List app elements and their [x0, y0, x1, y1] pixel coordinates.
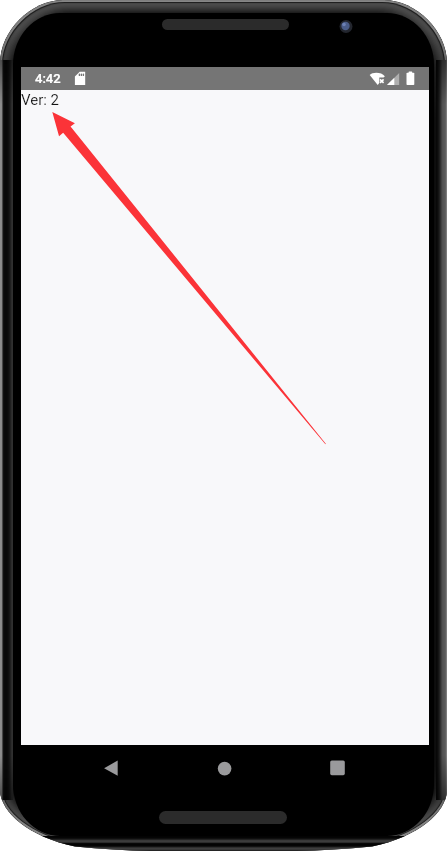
staticText: Ver: 2	[21, 91, 60, 109]
staticText: 4:42	[35, 71, 61, 86]
button[interactable]: Home	[194, 748, 256, 789]
button[interactable]: Back	[80, 748, 142, 789]
button[interactable]: Recent apps	[306, 748, 368, 789]
